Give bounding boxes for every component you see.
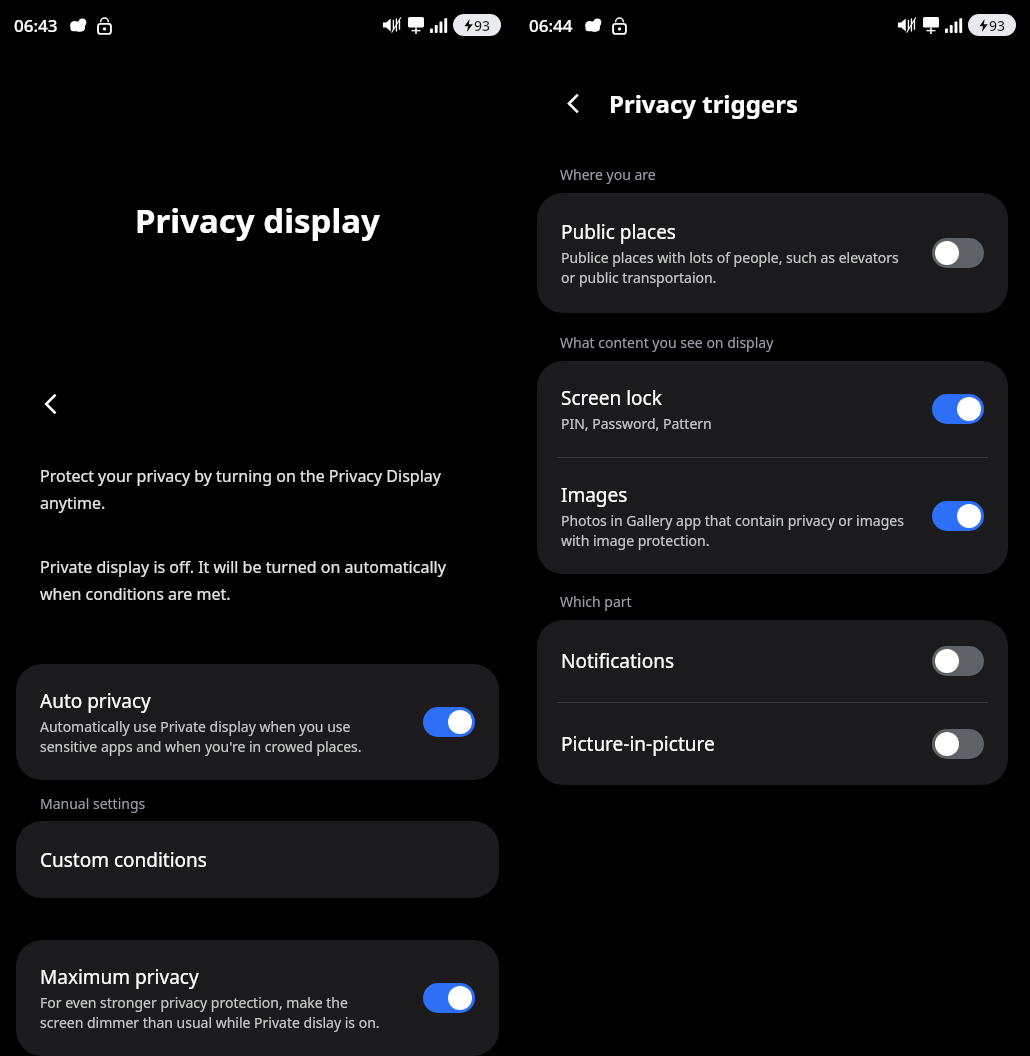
button[interactable]: Images — [932, 501, 984, 531]
staticText: 06:44 — [529, 14, 573, 37]
staticText: Custom conditions — [40, 847, 207, 873]
button[interactable]: Picture-in-picture — [537, 703, 1008, 785]
button[interactable]: Auto privacy — [423, 707, 475, 737]
button[interactable]: Notifications — [932, 646, 984, 676]
staticText: Notifications — [561, 648, 675, 674]
staticText: Privacy triggers — [609, 87, 798, 120]
staticText: Screen lock — [561, 385, 662, 411]
button[interactable]: Screen lock — [537, 361, 1008, 457]
staticText: Which part — [560, 592, 632, 611]
button[interactable]: Back — [30, 383, 72, 425]
staticText: Manual settings — [40, 794, 146, 813]
button[interactable]: Picture-in-picture — [932, 729, 984, 759]
staticText: Where you are — [560, 165, 656, 184]
staticText: 93 — [474, 16, 491, 35]
button[interactable]: Public places — [932, 238, 984, 268]
staticText: For even stronger privacy protection, ma… — [40, 993, 380, 1032]
button[interactable]: Custom conditions — [16, 821, 499, 898]
button[interactable]: Screen lock — [932, 394, 984, 424]
staticText: Publice places with lots of people, such… — [561, 248, 899, 287]
staticText: PIN, Password, Pattern — [561, 414, 712, 433]
staticText: Auto privacy — [40, 688, 151, 714]
button[interactable]: Auto privacy — [16, 664, 499, 780]
button[interactable]: Maximum privacy — [16, 940, 499, 1056]
staticText: Photos in Gallery app that contain priva… — [561, 511, 904, 550]
staticText: Images — [561, 482, 628, 508]
button[interactable]: Public places — [537, 193, 1008, 313]
staticText: What content you see on display — [560, 333, 774, 352]
staticText: 93 — [989, 16, 1006, 35]
staticText: Picture-in-picture — [561, 731, 715, 757]
staticText: 06:43 — [14, 14, 58, 37]
button[interactable]: Maximum privacy — [423, 983, 475, 1013]
staticText: Privacy display — [0, 198, 515, 243]
staticText: Private display is off. It will be turne… — [40, 556, 455, 605]
staticText: Public places — [561, 219, 676, 245]
staticText: Automatically use Private display when y… — [40, 717, 362, 756]
button[interactable]: Back — [553, 83, 593, 123]
staticText: Protect your privacy by turning on the P… — [40, 465, 455, 514]
staticText: Maximum privacy — [40, 964, 199, 990]
button[interactable]: Images — [537, 458, 1008, 574]
button[interactable]: Notifications — [537, 620, 1008, 702]
